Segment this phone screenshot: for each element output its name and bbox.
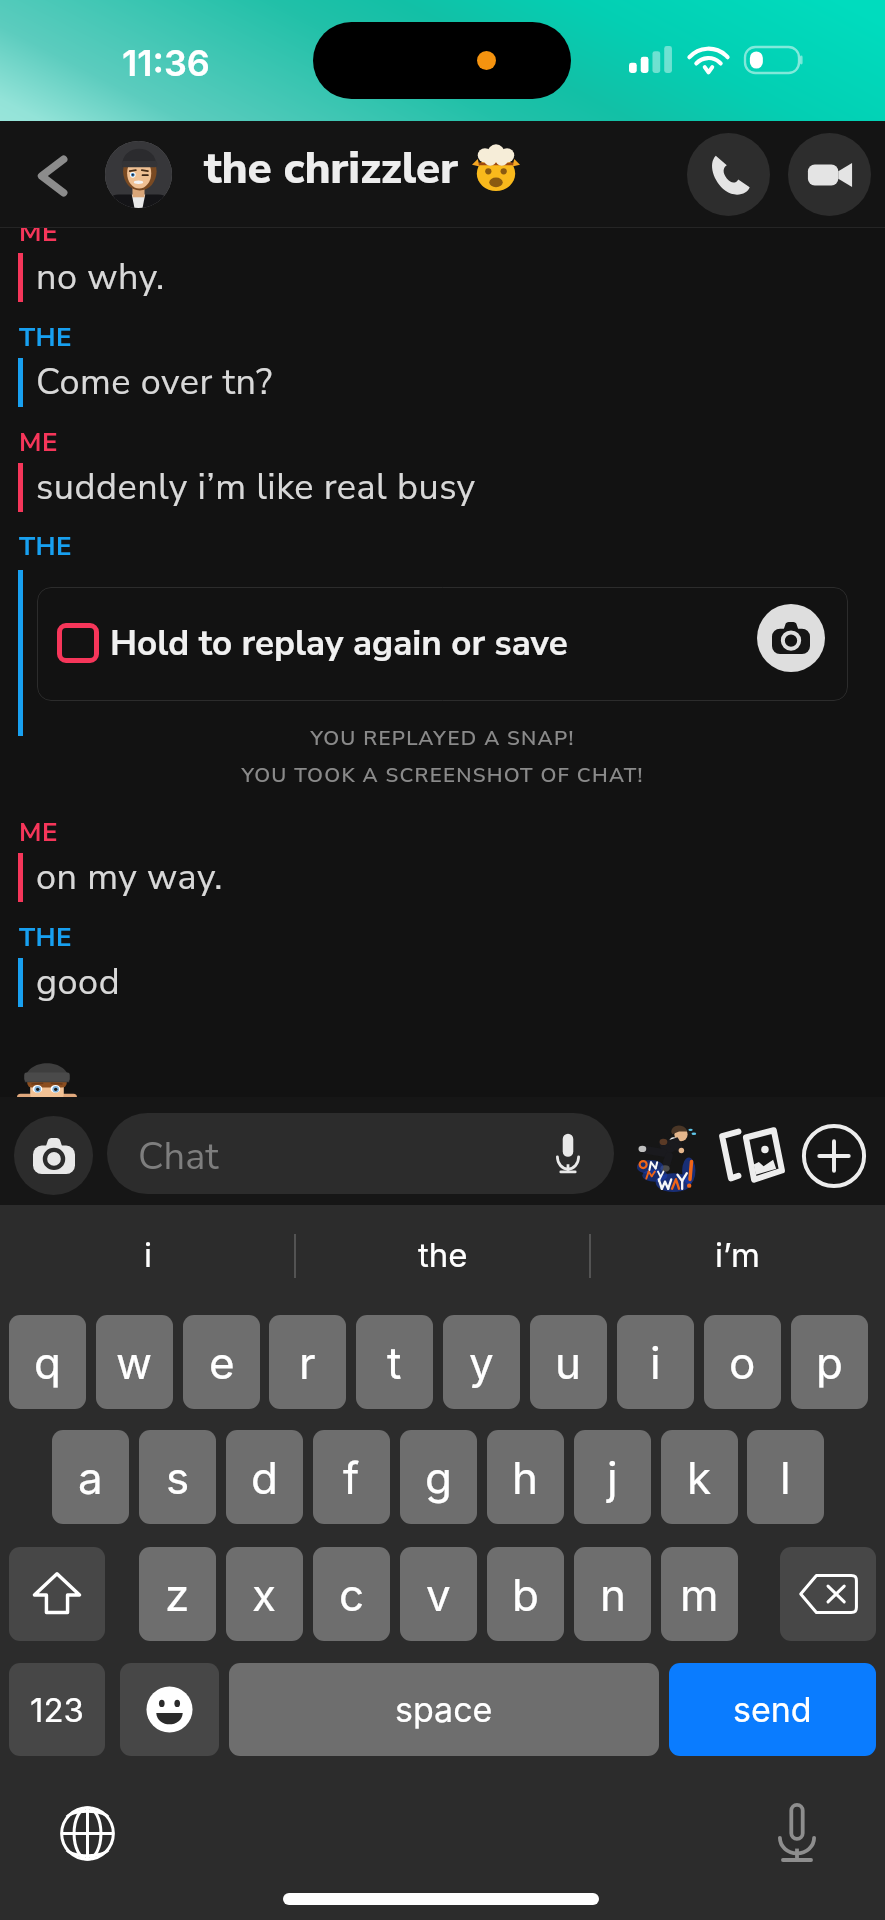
staticText: Hold to replay again or save <box>110 620 568 668</box>
staticText: 123 <box>30 1690 84 1730</box>
button[interactable]: a <box>52 1430 129 1524</box>
button[interactable]: Call <box>687 133 770 216</box>
button[interactable]: p <box>791 1315 868 1409</box>
staticText: a <box>78 1451 103 1504</box>
staticText: i’m <box>715 1235 760 1275</box>
button[interactable]: o <box>704 1315 781 1409</box>
button[interactable]: u <box>530 1315 607 1409</box>
button[interactable]: Back <box>18 141 88 211</box>
staticText: p <box>816 1336 843 1389</box>
button[interactable]: m <box>661 1547 738 1641</box>
button[interactable]: c <box>313 1547 390 1641</box>
button[interactable]: Profile <box>105 141 172 208</box>
staticText: t <box>387 1336 402 1389</box>
staticText: n <box>600 1568 626 1621</box>
button[interactable]: t <box>356 1315 433 1409</box>
button[interactable]: z <box>139 1547 216 1641</box>
staticText: u <box>555 1336 582 1389</box>
staticText: good <box>36 958 121 1007</box>
button[interactable]: r <box>269 1315 346 1409</box>
staticText: THE <box>19 320 72 355</box>
staticText: THE <box>19 920 72 955</box>
other: Emoji keyboard <box>145 1685 194 1734</box>
staticText: z <box>165 1568 190 1621</box>
button[interactable]: Hold to replay again or save <box>37 587 848 701</box>
button[interactable]: i’m <box>590 1205 885 1305</box>
button[interactable]: Come over tn? <box>0 354 885 410</box>
staticText: i <box>144 1235 152 1275</box>
button[interactable]: the <box>295 1205 590 1305</box>
staticText: ME <box>19 425 58 460</box>
button[interactable]: suddenly i’m like real busy <box>0 459 885 515</box>
button[interactable]: Video call <box>788 133 871 216</box>
staticText: d <box>251 1451 278 1504</box>
button[interactable]: i <box>0 1205 295 1305</box>
staticText: m <box>680 1568 719 1621</box>
staticText: w <box>116 1336 153 1389</box>
staticText: g <box>425 1451 452 1504</box>
staticText: YOU REPLAYED A SNAP! <box>0 724 885 752</box>
button[interactable]: Shift <box>9 1547 105 1641</box>
other: Shift <box>33 1571 81 1617</box>
staticText: y <box>469 1336 494 1389</box>
button[interactable]: Bitmoji sticker <box>626 1117 704 1195</box>
button[interactable]: j <box>574 1430 651 1524</box>
button[interactable]: l <box>747 1430 824 1524</box>
button[interactable]: Open camera <box>14 1116 93 1195</box>
button[interactable]: n <box>574 1547 651 1641</box>
staticText: l <box>780 1451 791 1504</box>
button[interactable]: Backspace <box>780 1547 876 1641</box>
staticText: ME <box>19 815 58 850</box>
button[interactable]: no why. <box>0 249 885 305</box>
button[interactable]: d <box>226 1430 303 1524</box>
button[interactable]: k <box>661 1430 738 1524</box>
staticText: c <box>339 1568 365 1621</box>
button[interactable]: 123 <box>9 1663 105 1756</box>
button[interactable]: space <box>229 1663 659 1756</box>
staticText: o <box>729 1336 756 1389</box>
staticText: x <box>252 1568 277 1621</box>
button[interactable]: y <box>443 1315 520 1409</box>
staticText: e <box>209 1336 235 1389</box>
staticText: space <box>395 1689 493 1730</box>
button[interactable]: send <box>669 1663 876 1756</box>
button[interactable]: q <box>9 1315 86 1409</box>
button[interactable]: good <box>0 954 885 1010</box>
button[interactable]: Stickers <box>714 1120 786 1192</box>
staticText: j <box>607 1451 618 1504</box>
button[interactable]: on my way. <box>0 849 885 905</box>
other: Backspace <box>799 1572 857 1616</box>
staticText: h <box>512 1451 539 1504</box>
button[interactable]: Open camera <box>757 604 825 672</box>
staticText: v <box>426 1568 451 1621</box>
button[interactable]: Change keyboard <box>55 1801 120 1866</box>
button[interactable]: Dictation <box>765 1800 829 1866</box>
button[interactable]: More options <box>798 1120 870 1192</box>
staticText: b <box>512 1568 539 1621</box>
staticText: f <box>343 1451 360 1504</box>
staticText: the <box>418 1235 468 1275</box>
staticText: no why. <box>36 253 165 302</box>
button[interactable]: f <box>313 1430 390 1524</box>
button[interactable]: w <box>96 1315 173 1409</box>
button[interactable]: Chat <box>107 1113 614 1194</box>
staticText: i <box>650 1336 661 1389</box>
staticText: q <box>34 1336 61 1389</box>
staticText: YOU TOOK A SCREENSHOT OF CHAT! <box>0 761 885 789</box>
button[interactable]: the chrizzler <box>204 139 458 199</box>
button[interactable]: g <box>400 1430 477 1524</box>
staticText: s <box>166 1451 190 1504</box>
button[interactable]: e <box>183 1315 260 1409</box>
button[interactable]: x <box>226 1547 303 1641</box>
button[interactable]: v <box>400 1547 477 1641</box>
button[interactable]: i <box>617 1315 694 1409</box>
button[interactable]: s <box>139 1430 216 1524</box>
staticText: suddenly i’m like real busy <box>36 463 476 512</box>
button[interactable]: Emoji keyboard <box>120 1663 219 1756</box>
staticText: ME <box>19 215 58 250</box>
button[interactable]: Voice message <box>544 1127 592 1179</box>
button[interactable]: b <box>487 1547 564 1641</box>
staticText: r <box>299 1336 316 1389</box>
staticText: Come over tn? <box>36 358 273 407</box>
button[interactable]: h <box>487 1430 564 1524</box>
